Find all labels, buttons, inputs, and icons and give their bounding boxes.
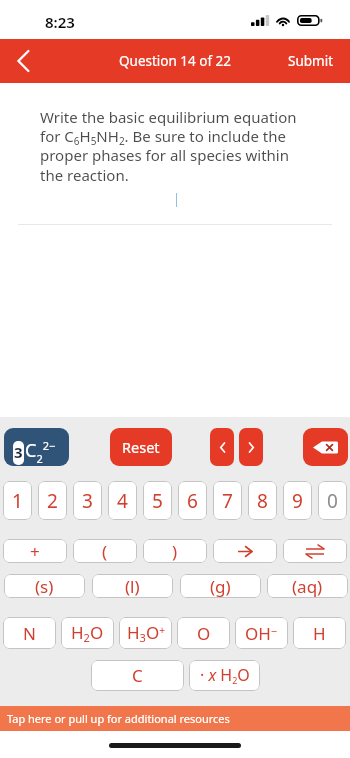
staticText: Write the basic equilibrium equation bbox=[40, 107, 297, 126]
staticText: ( bbox=[102, 540, 108, 563]
button[interactable]: 4 bbox=[108, 481, 137, 520]
button[interactable]: 5 bbox=[143, 481, 172, 520]
button[interactable]: 6 bbox=[178, 481, 207, 520]
staticText: N bbox=[23, 622, 36, 645]
button[interactable]: Next bbox=[239, 428, 263, 466]
staticText: (aq) bbox=[292, 575, 323, 598]
button[interactable]: ) bbox=[143, 539, 207, 563]
staticText: (s) bbox=[35, 575, 54, 598]
staticText: · x H2O bbox=[200, 664, 250, 687]
staticText: C22− bbox=[25, 438, 56, 466]
staticText: + bbox=[30, 540, 40, 563]
button[interactable]: 1 bbox=[3, 481, 32, 520]
staticText: 0 bbox=[327, 488, 338, 514]
button[interactable]: 7 bbox=[213, 481, 242, 520]
staticText: 8 bbox=[257, 488, 268, 514]
button[interactable]: (s) bbox=[4, 574, 85, 598]
button[interactable]: 8 bbox=[248, 481, 277, 520]
button[interactable]: H bbox=[293, 617, 346, 649]
staticText: Submit bbox=[288, 52, 334, 70]
staticText: 8:23 bbox=[45, 12, 75, 32]
staticText: OH− bbox=[245, 622, 278, 645]
button[interactable]: (g) bbox=[180, 574, 261, 598]
staticText: the reaction. bbox=[40, 165, 129, 184]
staticText: H3O+ bbox=[127, 621, 165, 646]
staticText: 7 bbox=[222, 488, 233, 514]
staticText: 9 bbox=[292, 488, 303, 514]
staticText: (g) bbox=[210, 575, 231, 598]
staticText: O bbox=[197, 622, 211, 645]
staticText: ) bbox=[172, 540, 178, 563]
staticText: 6 bbox=[187, 488, 198, 514]
button[interactable]: ( bbox=[73, 539, 137, 563]
button[interactable]: 0 bbox=[318, 481, 347, 520]
button[interactable]: (l) bbox=[92, 574, 173, 598]
staticText: 2 bbox=[47, 488, 58, 514]
staticText: proper phases for all species within bbox=[40, 145, 289, 165]
staticText: for C6H5NH2. Be sure to include the bbox=[40, 126, 286, 145]
staticText: 3 bbox=[82, 488, 93, 514]
staticText: Reset bbox=[122, 437, 160, 457]
staticText: Tap here or pull up for additional resou… bbox=[7, 711, 230, 726]
button[interactable]: 3 bbox=[4, 428, 69, 466]
button[interactable]: N bbox=[3, 617, 56, 649]
button[interactable]: H3O+ bbox=[119, 617, 172, 649]
button[interactable] bbox=[283, 539, 347, 563]
staticText: C bbox=[132, 664, 143, 687]
button[interactable] bbox=[213, 539, 277, 563]
button[interactable]: Delete bbox=[303, 428, 348, 466]
staticText: 4 bbox=[117, 488, 128, 514]
button[interactable]: · x H2O bbox=[189, 660, 260, 691]
button[interactable]: 3 bbox=[73, 481, 102, 520]
button[interactable]: Previous bbox=[210, 428, 234, 466]
staticText: H2O bbox=[71, 621, 104, 646]
staticText: (l) bbox=[125, 575, 140, 598]
button[interactable]: 2 bbox=[38, 481, 67, 520]
button[interactable]: Submit bbox=[272, 39, 350, 83]
button[interactable]: OH− bbox=[235, 617, 288, 649]
staticText: Question 14 of 22 bbox=[119, 52, 232, 70]
button[interactable]: + bbox=[3, 539, 67, 563]
staticText: 5 bbox=[152, 488, 163, 514]
button[interactable]: 9 bbox=[283, 481, 312, 520]
button[interactable]: Reset bbox=[110, 428, 172, 466]
button[interactable]: O bbox=[177, 617, 230, 649]
button[interactable]: (aq) bbox=[267, 574, 348, 598]
button[interactable]: H2O bbox=[61, 617, 114, 649]
staticText: H bbox=[313, 622, 326, 645]
staticText: 1 bbox=[12, 488, 23, 514]
staticText: 3 bbox=[14, 442, 23, 462]
button[interactable]: Back bbox=[0, 39, 46, 83]
button[interactable]: Tap here or pull up for additional resou… bbox=[0, 706, 350, 731]
button[interactable]: C bbox=[91, 660, 184, 691]
